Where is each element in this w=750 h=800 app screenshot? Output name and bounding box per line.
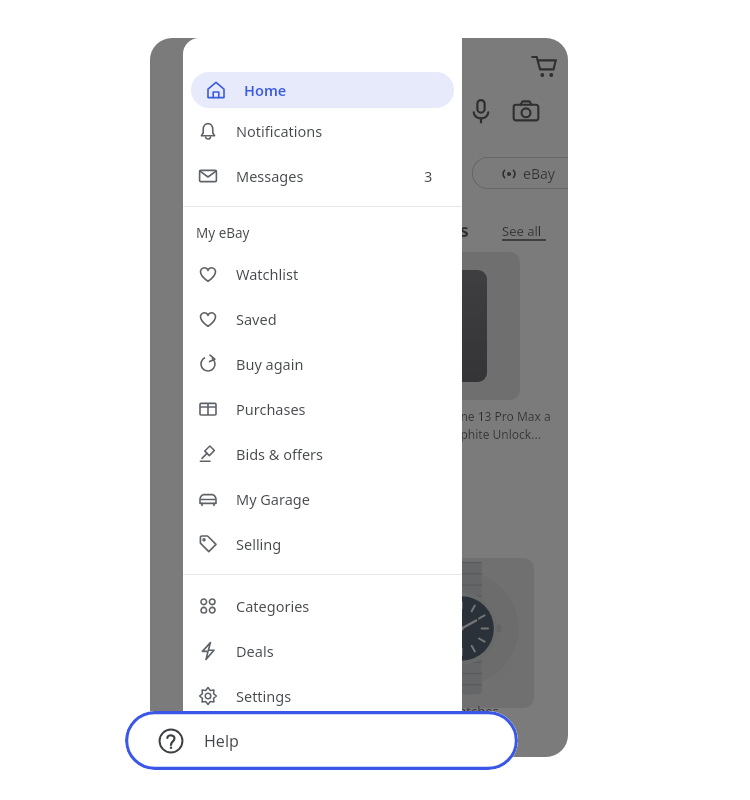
button[interactable]: Notifications xyxy=(183,108,462,153)
staticText: Deals xyxy=(236,641,274,661)
button[interactable]: Settings xyxy=(183,673,462,718)
staticText: Messages xyxy=(236,166,304,186)
staticText: Bids & offers xyxy=(236,444,324,464)
staticText: Top picks xyxy=(386,218,469,243)
staticText: Buy again xyxy=(236,354,304,374)
staticText: My eBay xyxy=(196,224,250,242)
button[interactable]: Selling xyxy=(183,521,462,566)
staticText: My Garage xyxy=(236,489,310,509)
staticText: Help xyxy=(204,730,239,752)
staticText: Apple iPhone 13 Pro Max a xyxy=(400,408,551,424)
button[interactable]: Watchlist xyxy=(183,251,462,296)
staticText: Settings xyxy=(236,686,292,706)
staticText: Home xyxy=(244,80,287,100)
staticText: Notifications xyxy=(236,121,323,141)
staticText: eBay xyxy=(523,164,555,183)
staticText: Categories xyxy=(236,596,310,616)
staticText: Saved xyxy=(236,309,277,329)
button[interactable]: Categories xyxy=(183,583,462,628)
button[interactable]: Deals xyxy=(183,628,462,673)
button[interactable]: My Garage xyxy=(183,476,462,521)
button[interactable]: Buy again xyxy=(183,341,462,386)
staticText: Selling xyxy=(236,534,282,554)
button[interactable]: Purchases xyxy=(183,386,462,431)
button[interactable]: Saved xyxy=(183,296,462,341)
staticText: See all xyxy=(502,222,542,240)
staticText: 256GB Graphite Unlock... xyxy=(400,426,541,442)
staticText: Deals xyxy=(409,164,443,182)
staticText: Watchlist xyxy=(236,264,299,284)
staticText: Luxury Watches xyxy=(402,702,499,720)
staticText: Purchases xyxy=(236,399,306,419)
staticText: 3 xyxy=(424,166,433,186)
button[interactable]: Messages xyxy=(183,153,462,198)
button[interactable]: Bids & offers xyxy=(183,431,462,476)
button[interactable]: Home xyxy=(191,72,454,108)
button[interactable]: Help xyxy=(125,711,518,770)
